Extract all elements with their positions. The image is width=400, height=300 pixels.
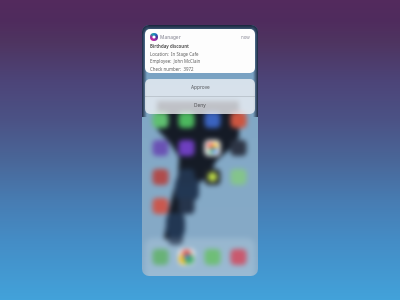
button[interactable]: Deny	[145, 97, 255, 114]
button[interactable]: Approve	[145, 79, 255, 96]
staticText: now	[241, 34, 250, 40]
staticText: Deny	[194, 102, 206, 109]
staticText: Approve	[191, 84, 210, 91]
button[interactable]: Manager	[145, 29, 255, 73]
staticText: Location: In Stage Cafe	[150, 51, 199, 57]
staticText: Check number: 3972	[150, 66, 194, 72]
staticText: Employee: John McClain	[150, 58, 201, 64]
staticText: Birthday discount	[150, 43, 189, 49]
staticText: Manager	[160, 34, 181, 41]
